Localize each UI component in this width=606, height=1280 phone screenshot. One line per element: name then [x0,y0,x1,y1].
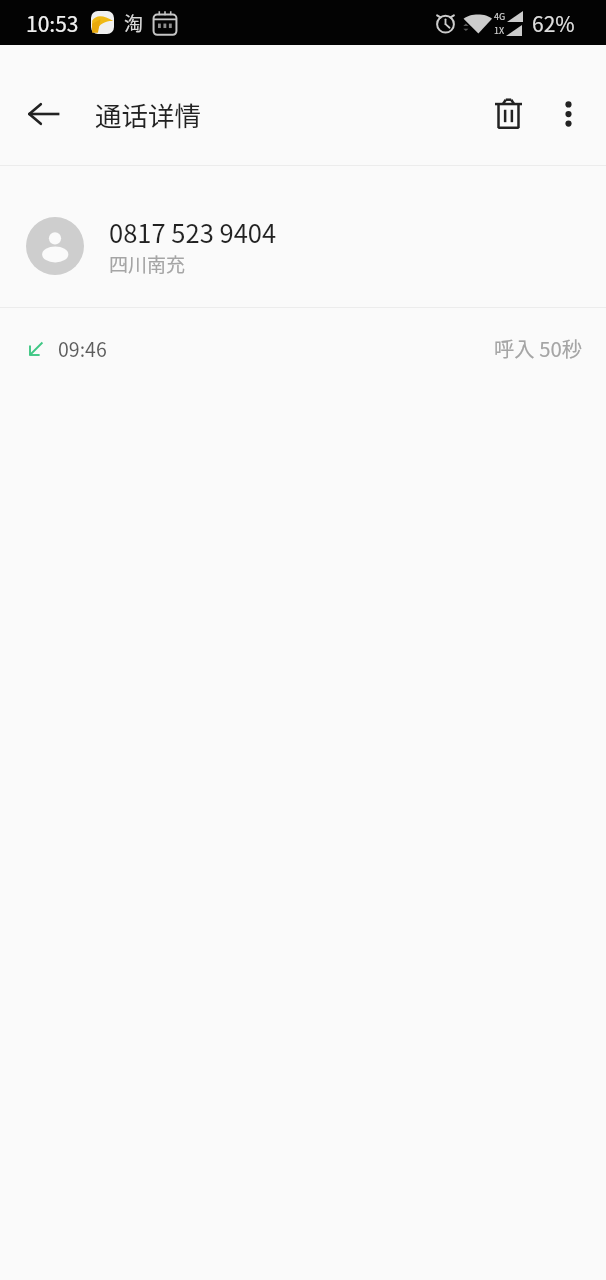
button[interactable]: 09:46 [0,308,606,387]
staticText: 淘 [124,9,144,37]
staticText: 10:53 [26,8,79,38]
staticText: 09:46 [58,334,107,362]
staticText: 4G [494,10,506,23]
button[interactable]: More options [542,62,594,165]
staticText: 62% [532,8,575,38]
staticText: 呼入 50秒 [494,333,582,362]
staticText: 通话详情 [95,95,201,133]
button[interactable]: Back [0,62,88,165]
staticText: 0817 523 9404 [109,213,277,250]
staticText: 1X [494,24,505,37]
button[interactable]: Delete [474,62,542,165]
staticText: 四川南充 [109,250,186,278]
button[interactable]: 0817 523 9404 [0,166,606,307]
